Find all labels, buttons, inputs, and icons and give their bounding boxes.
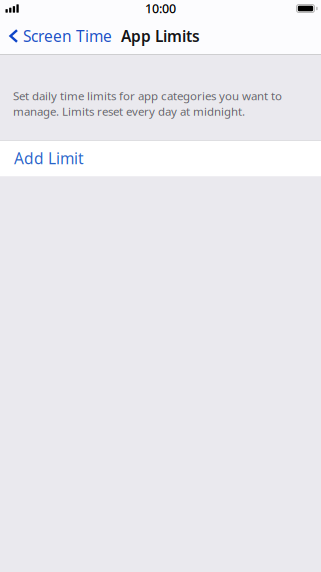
staticText: Screen Time bbox=[23, 26, 112, 46]
staticText: Add Limit bbox=[14, 148, 84, 168]
button[interactable]: Screen Time bbox=[0, 18, 120, 54]
staticText: App Limits bbox=[121, 26, 200, 46]
staticText: Set daily time limits for app categories… bbox=[13, 88, 282, 119]
staticText: 10:00 bbox=[145, 0, 176, 17]
button[interactable]: Add Limit bbox=[0, 140, 321, 176]
